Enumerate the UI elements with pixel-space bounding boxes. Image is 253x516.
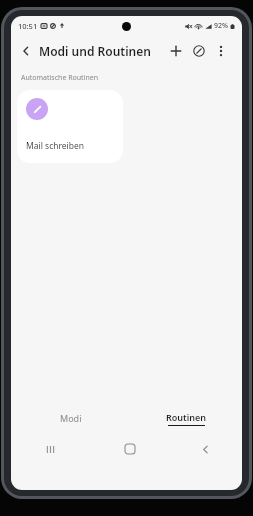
button[interactable]: Entdecken <box>188 40 210 62</box>
staticText: Mail schreiben <box>26 140 85 152</box>
button[interactable]: Letzte Apps <box>11 438 90 460</box>
staticText: Automatische Routinen <box>21 73 99 83</box>
staticText: Routinen <box>166 411 207 423</box>
button[interactable]: Weitere Optionen <box>211 41 231 61</box>
button[interactable]: Mail schreiben <box>17 90 123 163</box>
button[interactable]: Routinen <box>130 408 242 428</box>
button[interactable]: Startbildschirm <box>90 438 169 460</box>
button[interactable]: Zurück <box>169 438 242 460</box>
button[interactable]: Zurück <box>16 41 36 61</box>
staticText: 10:51 <box>18 21 38 31</box>
staticText: Modi <box>60 412 82 424</box>
button[interactable]: Modi <box>11 408 130 428</box>
staticText: 92% <box>214 21 228 31</box>
staticText: Modi und Routinen <box>39 43 151 59</box>
button[interactable]: Hinzufügen <box>165 40 187 62</box>
